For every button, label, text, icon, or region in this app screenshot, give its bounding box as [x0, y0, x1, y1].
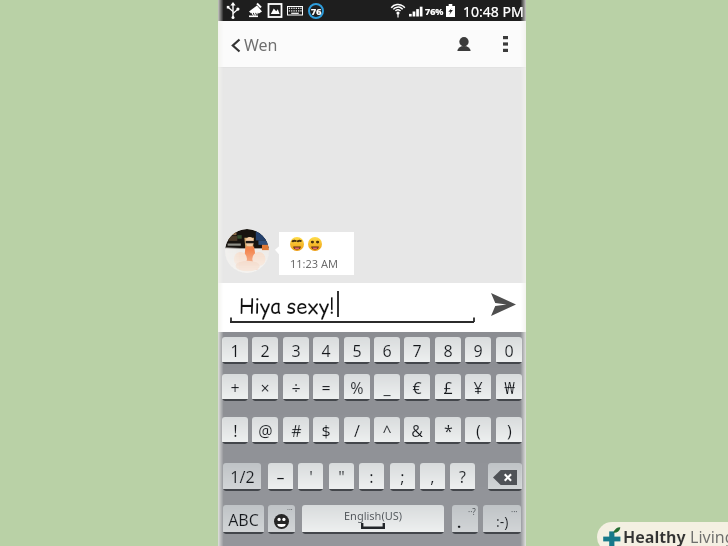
staticText: 10:48 PM: [463, 2, 524, 21]
button[interactable]: 5: [344, 337, 370, 364]
staticText: /: [354, 420, 360, 442]
staticText: $: [321, 420, 331, 442]
staticText: ×: [260, 377, 270, 399]
staticText: .: [457, 512, 462, 532]
staticText: ;: [400, 466, 405, 488]
button[interactable]: 7: [404, 337, 430, 364]
button[interactable]: ): [496, 417, 522, 444]
button[interactable]: =: [313, 374, 339, 401]
button[interactable]: !: [222, 417, 248, 444]
staticText: (: [476, 420, 481, 442]
button[interactable]: ₩: [496, 374, 522, 401]
staticText: Hiya sexy!: [239, 293, 335, 321]
button[interactable]: @: [252, 417, 278, 444]
staticText: 7: [412, 340, 422, 362]
staticText: 2: [260, 340, 270, 362]
button[interactable]: ···: [483, 505, 521, 534]
button[interactable]: Wen: [226, 29, 284, 61]
staticText: ': [309, 466, 313, 488]
button[interactable]: 0: [496, 337, 522, 364]
button[interactable]: 11:23 AM: [279, 232, 354, 275]
staticText: #: [291, 420, 302, 442]
button[interactable]: 2: [252, 337, 278, 364]
button[interactable]: #: [283, 417, 309, 444]
button[interactable]: £: [435, 374, 461, 401]
button[interactable]: ÷: [283, 374, 309, 401]
staticText: £: [443, 377, 453, 399]
button[interactable]: ABC: [223, 505, 264, 534]
button[interactable]: Emoticons: [268, 505, 295, 534]
button[interactable]: _: [374, 374, 400, 401]
button[interactable]: ': [298, 463, 323, 491]
button[interactable]: /: [344, 417, 370, 444]
staticText: 1/2: [230, 466, 255, 488]
staticText: ^: [382, 420, 392, 442]
button[interactable]: More options: [490, 29, 520, 59]
button[interactable]: ,: [420, 463, 445, 491]
staticText: Wen: [244, 34, 278, 56]
staticText: *: [444, 420, 453, 442]
staticText: 6: [382, 340, 392, 362]
staticText: :-): [496, 512, 509, 531]
button[interactable]: Send: [486, 287, 520, 321]
staticText: English(US): [344, 508, 403, 523]
button[interactable]: 9: [465, 337, 491, 364]
staticText: 0: [504, 340, 514, 362]
staticText: ?: [459, 466, 466, 488]
button[interactable]: ;: [390, 463, 415, 491]
staticText: ): [507, 420, 512, 442]
staticText: 1: [230, 340, 240, 362]
button[interactable]: ": [329, 463, 354, 491]
button[interactable]: &: [404, 417, 430, 444]
staticText: %: [350, 377, 364, 399]
staticText: Living: [690, 526, 728, 546]
button[interactable]: 1: [222, 337, 248, 364]
button[interactable]: ··?: [452, 505, 478, 534]
staticText: +: [230, 377, 240, 399]
staticText: 8: [443, 340, 453, 362]
staticText: ¥: [473, 377, 483, 399]
button[interactable]: Backspace: [488, 463, 522, 491]
staticText: ··?: [468, 506, 476, 517]
button[interactable]: 3: [283, 337, 309, 364]
button[interactable]: €: [404, 374, 430, 401]
button[interactable]: Contact: [448, 29, 480, 61]
staticText: ₩: [504, 377, 515, 399]
staticText: ÷: [291, 377, 301, 399]
button[interactable]: English(US): [302, 505, 444, 534]
button[interactable]: 4: [313, 337, 339, 364]
staticText: &: [411, 420, 423, 442]
staticText: Healthy: [623, 526, 686, 546]
button[interactable]: $: [313, 417, 339, 444]
staticText: 5: [352, 340, 362, 362]
staticText: 76%: [425, 5, 444, 17]
button[interactable]: ^: [374, 417, 400, 444]
staticText: 4: [321, 340, 331, 362]
staticText: :: [369, 466, 374, 488]
button[interactable]: ¥: [465, 374, 491, 401]
button[interactable]: *: [435, 417, 461, 444]
button[interactable]: 6: [374, 337, 400, 364]
button[interactable]: +: [222, 374, 248, 401]
staticText: ···: [511, 506, 518, 517]
staticText: !: [233, 420, 238, 442]
button[interactable]: –: [268, 463, 293, 491]
staticText: €: [412, 377, 422, 399]
staticText: _: [383, 377, 391, 399]
button[interactable]: ?: [450, 463, 475, 491]
button[interactable]: :: [359, 463, 384, 491]
staticText: ,: [430, 466, 435, 488]
staticText: @: [258, 420, 273, 442]
staticText: 3: [291, 340, 301, 362]
button[interactable]: ×: [252, 374, 278, 401]
button[interactable]: %: [344, 374, 370, 401]
button[interactable]: 1/2: [223, 463, 261, 491]
staticText: ": [338, 466, 345, 488]
button[interactable]: 8: [435, 337, 461, 364]
staticText: 11:23 AM: [290, 256, 338, 271]
staticText: ABC: [228, 509, 259, 531]
staticText: 76: [311, 5, 322, 17]
button[interactable]: (: [465, 417, 491, 444]
staticText: ···: [287, 505, 293, 515]
staticText: 9: [473, 340, 483, 362]
